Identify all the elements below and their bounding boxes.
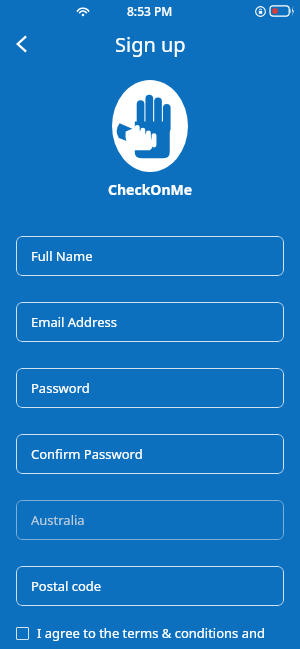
button[interactable]: I agree to the terms & conditions and — [16, 624, 284, 642]
staticText: I agree to the terms & conditions and — [37, 624, 266, 642]
button[interactable]: Back — [0, 22, 44, 66]
staticText: 8:53 PM — [127, 3, 173, 19]
staticText: Email Address — [31, 313, 117, 331]
button[interactable]: Email Address — [16, 302, 284, 342]
staticText: Postal code — [31, 577, 102, 595]
button[interactable]: Postal code — [16, 566, 284, 606]
staticText: Full Name — [31, 247, 93, 265]
staticText: Sign up — [115, 31, 186, 58]
staticText: CheckOnMe — [0, 180, 300, 199]
button[interactable]: Confirm Password — [16, 434, 284, 474]
staticText: Confirm Password — [31, 445, 143, 463]
button[interactable]: Australia — [16, 500, 284, 540]
button[interactable]: Password — [16, 368, 284, 408]
staticText: Password — [31, 379, 90, 397]
button[interactable]: Full Name — [16, 236, 284, 276]
staticText: Australia — [31, 511, 85, 529]
